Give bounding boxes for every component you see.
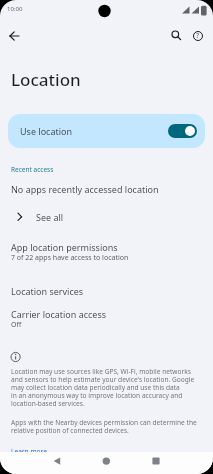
button[interactable]: Location services	[0, 281, 213, 301]
staticText: 7 of 22 apps have access to location	[11, 253, 129, 263]
staticText: See all	[36, 211, 64, 223]
button[interactable]	[148, 454, 164, 470]
staticText: Use location	[20, 125, 73, 137]
button[interactable]: ?	[191, 29, 205, 43]
staticText: 10:00	[7, 5, 23, 13]
staticText: No apps recently accessed location	[11, 183, 159, 195]
button[interactable]: Use location	[8, 114, 205, 148]
staticText: ?	[196, 31, 200, 41]
staticText: Recent access	[11, 165, 54, 174]
button[interactable]: App location permissions	[0, 238, 213, 266]
button[interactable]: Learn more	[11, 447, 47, 456]
staticText: Location may use sources like GPS, Wi-Fi…	[11, 367, 195, 408]
button[interactable]	[4, 28, 22, 46]
staticText: Location services	[11, 285, 84, 297]
button[interactable]: Carrier location access	[0, 305, 213, 333]
button[interactable]	[48, 454, 64, 470]
staticText: Carrier location access	[11, 308, 107, 320]
staticText: Apps with the Nearby devices permission …	[11, 418, 197, 435]
button[interactable]: No apps recently accessed location	[0, 179, 213, 199]
button[interactable]	[168, 28, 184, 44]
staticText: App location permissions	[11, 241, 118, 253]
button[interactable]: See all	[0, 207, 213, 227]
staticText: Location	[11, 68, 81, 91]
button[interactable]	[98, 454, 114, 470]
staticText: Off	[11, 320, 22, 330]
staticText: Learn more	[11, 447, 47, 456]
